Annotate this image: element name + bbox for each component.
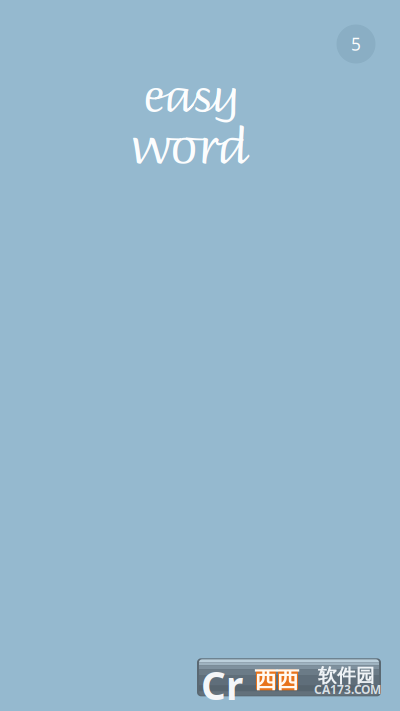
button[interactable]: Score: 5 (332, 20, 380, 68)
staticText: 西 (254, 666, 277, 694)
staticText: word (132, 104, 249, 178)
staticText: 5 (351, 32, 361, 55)
staticText: 西 (276, 666, 299, 694)
staticText: easy (143, 57, 240, 125)
staticText: 软件园 (318, 664, 375, 687)
staticText: Cr (201, 659, 243, 711)
staticText: CA173.COM (314, 681, 381, 697)
